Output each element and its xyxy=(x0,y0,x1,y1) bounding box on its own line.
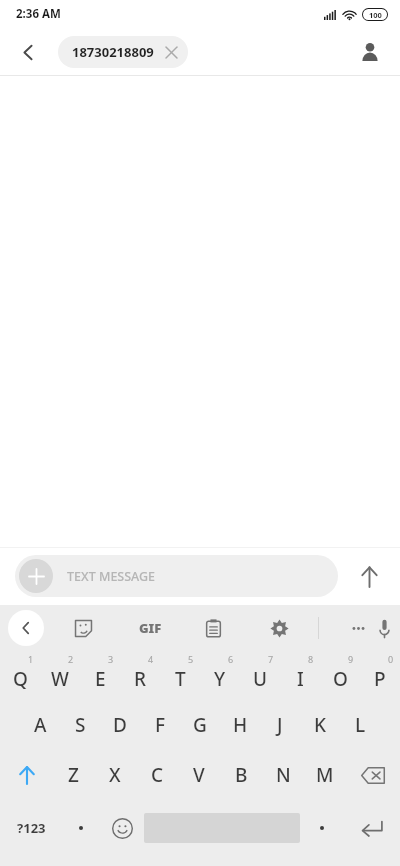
button[interactable]: P xyxy=(360,650,400,700)
button[interactable]: Backspace xyxy=(346,750,400,800)
button[interactable]: S xyxy=(60,700,100,750)
staticText: K xyxy=(314,712,327,738)
button[interactable]: Q xyxy=(0,650,40,700)
button[interactable]: B xyxy=(220,750,262,800)
staticText: C xyxy=(151,762,164,788)
button[interactable]: D xyxy=(100,700,140,750)
staticText: X xyxy=(109,762,121,788)
staticText: R xyxy=(134,666,147,692)
staticText: V xyxy=(193,762,205,788)
staticText: 8 xyxy=(308,653,314,665)
staticText: P xyxy=(374,666,386,692)
staticText: 4 xyxy=(148,653,154,665)
button[interactable]: L xyxy=(340,700,380,750)
button[interactable]: Emoji xyxy=(100,800,144,856)
button[interactable]: I xyxy=(280,650,320,700)
button[interactable]: Remove recipient xyxy=(162,43,180,61)
staticText: S xyxy=(75,712,86,738)
button[interactable]: N xyxy=(262,750,304,800)
button[interactable]: K xyxy=(300,700,340,750)
staticText: 9 xyxy=(348,653,354,665)
staticText: O xyxy=(333,666,348,692)
staticText: 6 xyxy=(228,653,234,665)
staticText: TEXT MESSAGE xyxy=(67,568,156,585)
button[interactable]: Z xyxy=(53,750,94,800)
staticText: H xyxy=(233,712,248,738)
staticText: F xyxy=(155,712,166,738)
button[interactable]: W xyxy=(40,650,80,700)
staticText: E xyxy=(95,666,106,692)
staticText: Z xyxy=(68,762,79,788)
button[interactable]: V xyxy=(178,750,220,800)
button[interactable]: ?123 xyxy=(0,800,62,856)
staticText: M xyxy=(316,762,334,788)
staticText: D xyxy=(113,712,127,738)
staticText: 2:36 AM xyxy=(16,6,61,22)
button[interactable]: GIF xyxy=(130,608,170,648)
button[interactable]: Add attachment xyxy=(15,555,338,597)
staticText: 18730218809 xyxy=(72,43,154,61)
staticText: L xyxy=(355,712,366,738)
staticText: 1 xyxy=(28,653,34,665)
staticText: GIF xyxy=(139,619,162,637)
button[interactable]: More options xyxy=(339,609,377,647)
button[interactable]: Back xyxy=(6,30,50,74)
button[interactable]: Enter xyxy=(344,800,400,856)
button[interactable]: Send xyxy=(338,552,400,600)
staticText: W xyxy=(51,666,69,692)
button[interactable]: Add attachment xyxy=(19,559,53,593)
button[interactable]: Back to keyboard xyxy=(8,610,44,646)
button[interactable]: Clipboard xyxy=(194,609,232,647)
staticText: 7 xyxy=(268,653,274,665)
button[interactable]: F xyxy=(140,700,180,750)
staticText: I xyxy=(297,666,304,692)
staticText: J xyxy=(277,712,283,738)
staticText: T xyxy=(175,666,186,692)
button[interactable]: Period xyxy=(300,800,344,856)
staticText: B xyxy=(235,762,248,788)
staticText: 3 xyxy=(108,653,114,665)
staticText: 5 xyxy=(188,653,194,665)
button[interactable]: T xyxy=(160,650,200,700)
staticText: Q xyxy=(13,666,28,692)
button[interactable]: Comma xyxy=(62,800,100,856)
button[interactable]: G xyxy=(180,700,220,750)
button[interactable]: Settings xyxy=(260,609,298,647)
button[interactable]: Contact details xyxy=(348,30,392,74)
staticText: A xyxy=(34,712,47,738)
button[interactable]: E xyxy=(80,650,120,700)
staticText: G xyxy=(193,712,207,738)
button[interactable]: Stickers xyxy=(64,609,102,647)
button[interactable]: O xyxy=(320,650,360,700)
button[interactable]: Shift xyxy=(0,750,53,800)
staticText: U xyxy=(253,666,268,692)
button[interactable]: H xyxy=(220,700,260,750)
staticText: 100 xyxy=(369,10,382,20)
staticText: 0 xyxy=(388,653,394,665)
button[interactable]: J xyxy=(260,700,300,750)
staticText: ?123 xyxy=(17,819,46,837)
button[interactable]: X xyxy=(94,750,136,800)
button[interactable]: U xyxy=(240,650,280,700)
button[interactable]: Voice input xyxy=(377,609,392,647)
button[interactable]: 18730218809 xyxy=(58,36,188,68)
staticText: Y xyxy=(214,666,226,692)
button[interactable]: M xyxy=(304,750,346,800)
button[interactable]: Y xyxy=(200,650,240,700)
button[interactable]: R xyxy=(120,650,160,700)
staticText: N xyxy=(276,762,291,788)
staticText: 2 xyxy=(68,653,74,665)
button[interactable]: C xyxy=(136,750,178,800)
button[interactable]: A xyxy=(20,700,60,750)
